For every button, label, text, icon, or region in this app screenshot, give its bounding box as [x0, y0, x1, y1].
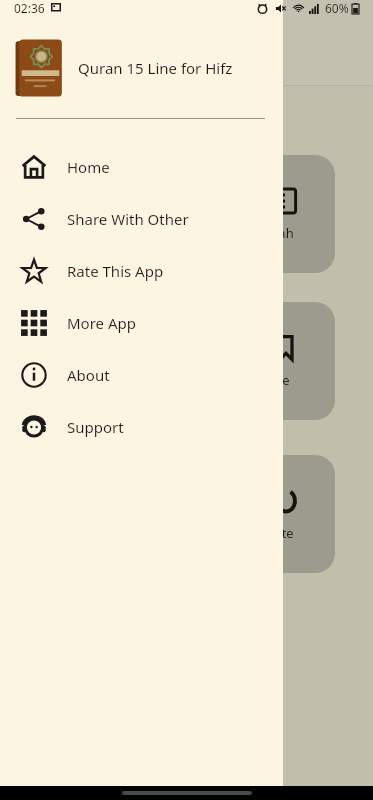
staticText: Share With Other: [67, 209, 189, 229]
staticText: Support: [67, 417, 124, 437]
staticText: More App: [67, 313, 136, 333]
button[interactable]: About: [0, 349, 283, 401]
button[interactable]: More App: [0, 297, 283, 349]
staticText: Rate This App: [67, 261, 164, 281]
button[interactable]: Rate This App: [0, 245, 283, 297]
staticText: e: [282, 371, 290, 389]
button[interactable]: ite: [236, 455, 335, 573]
staticText: 02:36: [14, 0, 45, 16]
staticText: ah: [278, 224, 294, 242]
staticText: 60%: [325, 0, 349, 16]
staticText: About: [67, 365, 110, 385]
button[interactable]: ah: [236, 155, 335, 273]
staticText: Home: [67, 157, 110, 177]
button[interactable]: Support: [0, 401, 283, 453]
button[interactable]: e: [236, 302, 335, 420]
button[interactable]: Home: [0, 141, 283, 193]
staticText: ite: [278, 524, 294, 542]
staticText: Quran 15 Line for Hifz: [78, 58, 233, 78]
button[interactable]: Share With Other: [0, 193, 283, 245]
